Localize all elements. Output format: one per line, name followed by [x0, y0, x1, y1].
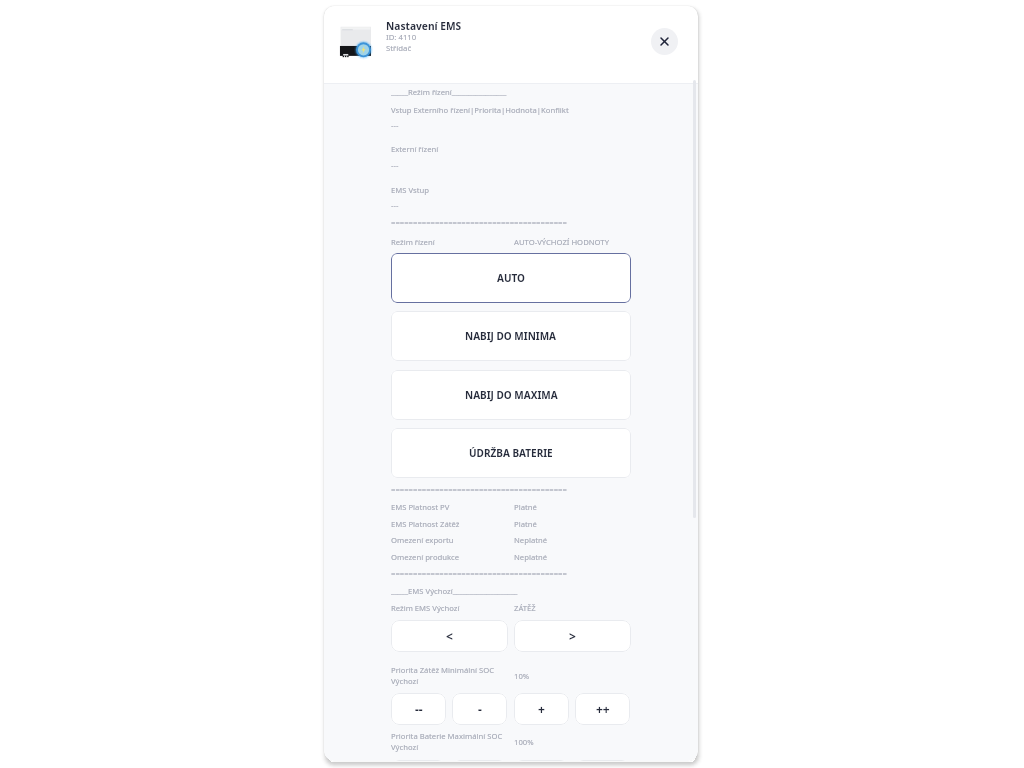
button[interactable]: Increase	[514, 693, 569, 725]
button[interactable]: Decrease	[452, 693, 507, 725]
button[interactable]: Close	[651, 28, 678, 55]
button[interactable]: Decrease by large step	[391, 760, 446, 761]
staticText: Režim EMS Výchozí	[391, 603, 460, 613]
staticText: ZÁTĚŽ	[514, 603, 536, 613]
staticText: AUTO-VÝCHOZÍ HODNOTY	[514, 237, 609, 247]
staticText: +	[538, 701, 545, 717]
staticText: Neplatné	[514, 552, 548, 562]
staticText: ---	[391, 120, 399, 130]
staticText: Vstup Externího řízení|Priorita|Hodnota|…	[391, 105, 569, 115]
staticText: EMS Vstup	[391, 185, 429, 195]
staticText: Platné	[514, 502, 537, 512]
staticText: Nastavení EMS	[386, 19, 462, 33]
button[interactable]: AUTO	[391, 253, 631, 303]
button[interactable]: ÚDRŽBA BATERIE	[391, 428, 631, 478]
staticText: _____EMS Výchozí___________________	[391, 586, 518, 596]
staticText: Priorita Baterie Maximální SOC Výchozí	[391, 731, 503, 753]
staticText: Priorita Zátěž Minimální SOC Výchozí	[391, 665, 503, 687]
staticText: Režim řízení	[391, 237, 435, 247]
button[interactable]: Decrease by large step	[391, 693, 446, 725]
staticText: ========================================	[391, 568, 567, 578]
staticText: ID: 4110	[386, 32, 417, 43]
staticText: NABIJ DO MINIMA	[465, 329, 557, 343]
staticText: 10%	[514, 671, 530, 681]
button[interactable]: Increase	[514, 760, 569, 761]
staticText: Omezení exportu	[391, 535, 454, 545]
staticText: Neplatné	[514, 535, 548, 545]
staticText: _____Režim řízení________________	[391, 87, 507, 97]
button[interactable]: NABIJ DO MAXIMA	[391, 370, 631, 420]
staticText: ++	[596, 701, 610, 717]
staticText: ========================================	[391, 484, 567, 494]
staticText: AUTO	[497, 271, 525, 285]
button[interactable]: Next EMS mode	[514, 620, 631, 652]
staticText: ---	[391, 200, 399, 210]
staticText: ÚDRŽBA BATERIE	[469, 446, 553, 460]
staticText: ========================================	[391, 217, 567, 227]
staticText: EMS Platnost Zátěž	[391, 519, 460, 529]
button[interactable]: Decrease	[452, 760, 507, 761]
button[interactable]: Increase by large step	[575, 693, 630, 725]
staticText: --	[415, 701, 423, 717]
staticText: Střídač	[386, 43, 412, 54]
staticText: NABIJ DO MAXIMA	[465, 388, 558, 402]
button[interactable]: Increase by large step	[575, 760, 630, 761]
staticText: >	[569, 628, 576, 644]
staticText: ---	[391, 160, 399, 170]
staticText: Platné	[514, 519, 537, 529]
button[interactable]: Previous EMS mode	[391, 620, 508, 652]
staticText: -	[478, 701, 482, 717]
staticText: <	[446, 628, 453, 644]
staticText: 100%	[514, 737, 534, 747]
staticText: Externí řízení	[391, 144, 439, 154]
staticText: EMS Platnost PV	[391, 502, 450, 512]
staticText: Omezení produkce	[391, 552, 460, 562]
button[interactable]: NABIJ DO MINIMA	[391, 311, 631, 361]
